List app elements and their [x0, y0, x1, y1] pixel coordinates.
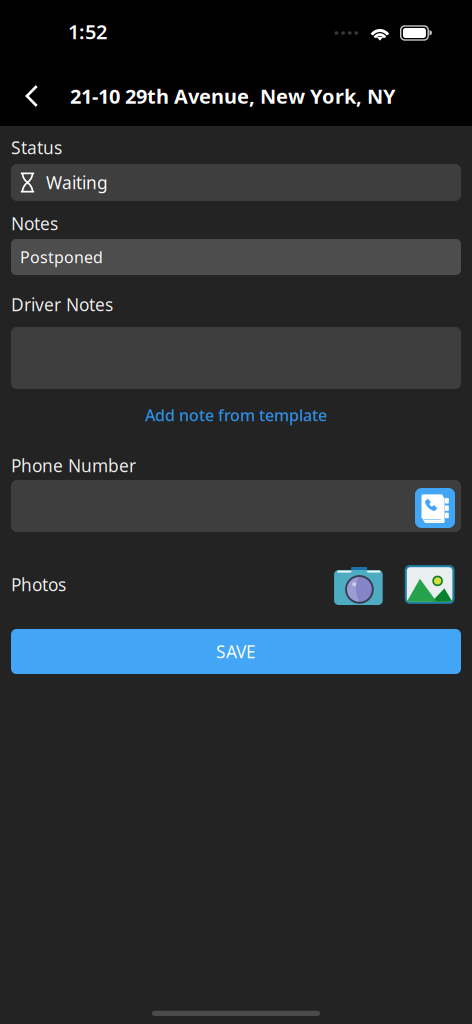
button[interactable]: Take photo	[334, 565, 383, 603]
staticText: 21-10 29th Avenue, New York, NY	[70, 83, 396, 109]
staticText: Photos	[11, 573, 66, 596]
button[interactable]: Waiting	[11, 164, 461, 201]
staticText: Driver Notes	[11, 293, 113, 316]
staticText: Waiting	[46, 171, 108, 194]
staticText: Add note from template	[145, 404, 327, 426]
staticText: Notes	[11, 212, 58, 235]
button[interactable]: SAVE	[11, 629, 461, 674]
button[interactable]: Choose photo from library	[405, 565, 454, 604]
button[interactable]: Back	[0, 73, 62, 119]
staticText: SAVE	[216, 640, 256, 663]
button[interactable]: Add note from template	[11, 404, 461, 426]
staticText: 1:52	[68, 18, 107, 45]
staticText: Status	[11, 136, 62, 159]
staticText: Phone Number	[11, 454, 136, 477]
button[interactable]: Pick from contacts	[415, 486, 461, 526]
staticText: Postponed	[20, 246, 103, 268]
